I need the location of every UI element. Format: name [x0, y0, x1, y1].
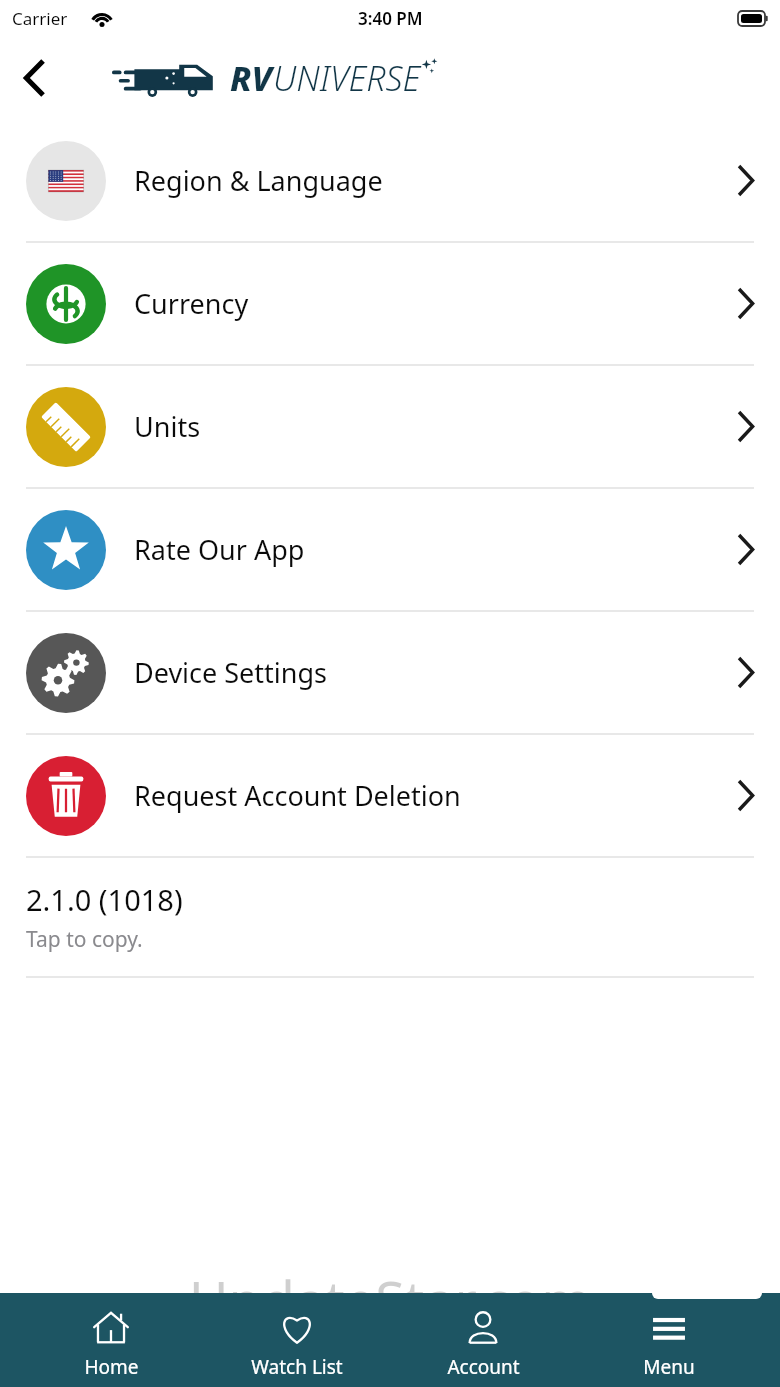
button[interactable]: 2.1.0 (1018)	[0, 858, 780, 976]
button[interactable]: Region & Language	[0, 120, 780, 241]
staticText: Region & Language	[134, 162, 737, 199]
button[interactable]: Back	[10, 52, 62, 104]
button[interactable]: Rate Our App	[0, 489, 780, 610]
button[interactable]: Currency	[0, 243, 780, 364]
button[interactable]: Menu	[594, 1299, 744, 1387]
staticText: Watch List	[251, 1354, 343, 1380]
staticText: Account	[447, 1354, 520, 1380]
staticText: Units	[134, 408, 737, 445]
staticText: Carrier	[12, 7, 68, 30]
staticText: Request Account Deletion	[134, 777, 737, 814]
staticText: Menu	[643, 1354, 695, 1380]
button[interactable]: Units	[0, 366, 780, 487]
staticText: Currency	[134, 285, 737, 322]
staticText: Rate Our App	[134, 531, 737, 568]
button[interactable]: Watch List	[222, 1299, 372, 1387]
staticText: Home	[84, 1354, 139, 1380]
button[interactable]: Account	[408, 1299, 558, 1387]
button[interactable]: Home	[36, 1299, 186, 1387]
button[interactable]: Device Settings	[0, 612, 780, 733]
staticText: 2.1.0 (1018)	[26, 880, 183, 919]
staticText: UNIVERSE	[273, 55, 421, 101]
staticText: RV	[230, 55, 273, 101]
staticText: Device Settings	[134, 654, 737, 691]
staticText: 3:40 PM	[358, 7, 423, 30]
button[interactable]: Request Account Deletion	[0, 735, 780, 856]
staticText: UpdateStar.com	[189, 1263, 592, 1337]
staticText: Tap to copy.	[26, 925, 143, 954]
